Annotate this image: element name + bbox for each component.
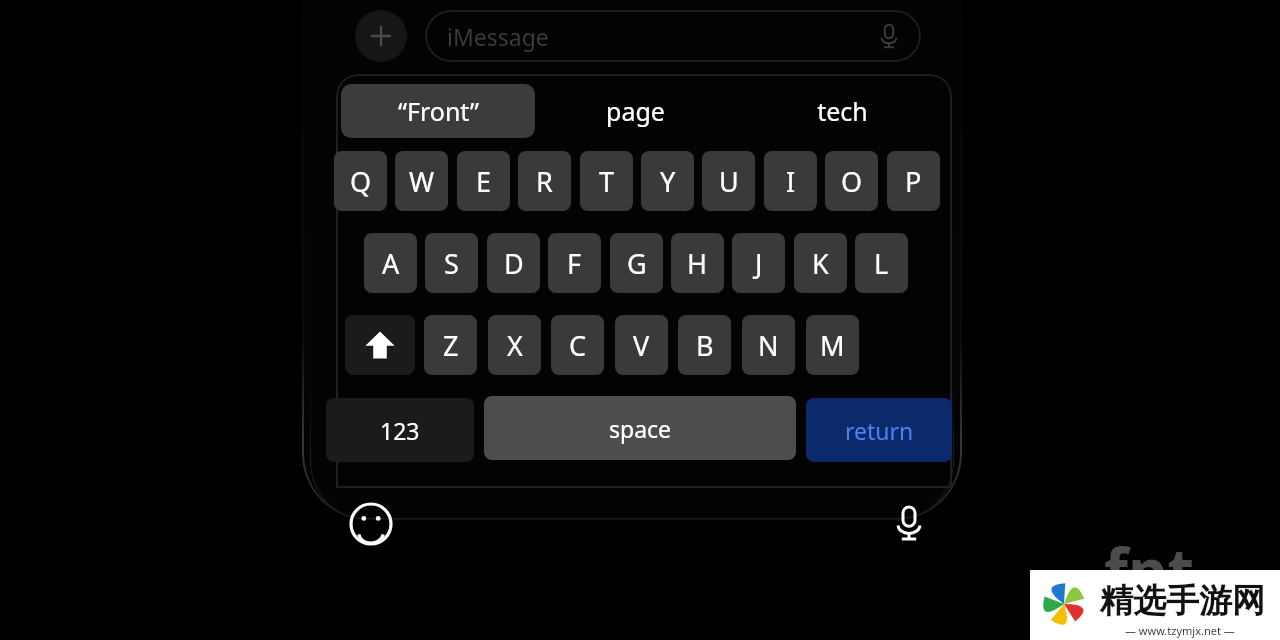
other: Dictate — [875, 22, 903, 50]
staticText: 123 — [380, 415, 420, 446]
staticText: S — [444, 245, 459, 282]
button[interactable]: S — [425, 233, 478, 293]
staticText: H — [687, 245, 708, 282]
staticText: fpt — [1104, 528, 1195, 612]
button[interactable]: R — [518, 151, 571, 211]
button[interactable]: J — [732, 233, 785, 293]
staticText: T — [599, 163, 615, 200]
staticText: Q — [350, 163, 372, 200]
button[interactable]: X — [488, 315, 541, 375]
button[interactable]: iMessage — [425, 10, 921, 62]
button[interactable]: tech — [770, 84, 915, 138]
button[interactable]: T — [580, 151, 633, 211]
button[interactable]: N — [742, 315, 795, 375]
staticText: E — [476, 163, 492, 200]
button[interactable]: E — [457, 151, 510, 211]
staticText: U — [719, 163, 739, 200]
staticText: B — [696, 327, 714, 364]
button[interactable]: space — [484, 396, 796, 460]
button[interactable]: Shift — [345, 315, 415, 375]
button[interactable]: L — [855, 233, 908, 293]
staticText: page — [606, 94, 665, 128]
button[interactable]: O — [825, 151, 878, 211]
button[interactable]: C — [551, 315, 604, 375]
staticText: P — [905, 163, 922, 200]
staticText: M — [820, 327, 845, 364]
staticText: Y — [660, 163, 676, 200]
button[interactable]: M — [806, 315, 859, 375]
staticText: — www.tzymjx.net — — [1125, 623, 1235, 638]
staticText: 精选手游网 — [1100, 580, 1265, 622]
button[interactable]: P — [887, 151, 940, 211]
staticText: C — [569, 327, 587, 364]
button[interactable]: F — [548, 233, 601, 293]
staticText: I — [786, 163, 796, 200]
button[interactable]: Z — [424, 315, 477, 375]
staticText: Z — [443, 327, 459, 364]
staticText: X — [507, 327, 523, 364]
staticText: tech — [817, 94, 868, 128]
button[interactable]: U — [702, 151, 755, 211]
button[interactable]: Add attachment — [355, 10, 407, 62]
button[interactable]: 123 — [326, 398, 474, 462]
staticText: K — [812, 245, 829, 282]
button[interactable]: I — [764, 151, 817, 211]
staticText: iMessage — [447, 21, 549, 52]
button[interactable]: W — [395, 151, 448, 211]
staticText: D — [504, 245, 524, 282]
button[interactable]: Y — [641, 151, 694, 211]
button[interactable]: return — [806, 398, 952, 462]
button[interactable]: A — [364, 233, 417, 293]
button[interactable]: G — [610, 233, 663, 293]
button[interactable]: Emoji — [348, 501, 394, 547]
button[interactable]: page — [560, 84, 710, 138]
staticText: A — [382, 245, 400, 282]
staticText: O — [841, 163, 863, 200]
button[interactable]: Dictation — [886, 500, 932, 546]
staticText: F — [567, 245, 582, 282]
button[interactable]: V — [615, 315, 668, 375]
staticText: space — [609, 413, 672, 444]
staticText: “Front” — [398, 94, 479, 128]
button[interactable]: B — [678, 315, 731, 375]
staticText: W — [409, 163, 435, 200]
button[interactable]: K — [794, 233, 847, 293]
staticText: V — [633, 327, 650, 364]
staticText: G — [627, 245, 647, 282]
button[interactable]: Q — [334, 151, 387, 211]
staticText: R — [536, 163, 553, 200]
button[interactable]: D — [487, 233, 540, 293]
staticText: J — [755, 245, 763, 282]
staticText: N — [758, 327, 779, 364]
staticText: return — [845, 415, 914, 446]
button[interactable]: “Front” — [341, 84, 535, 138]
button[interactable]: H — [671, 233, 724, 293]
staticText: L — [874, 245, 889, 282]
